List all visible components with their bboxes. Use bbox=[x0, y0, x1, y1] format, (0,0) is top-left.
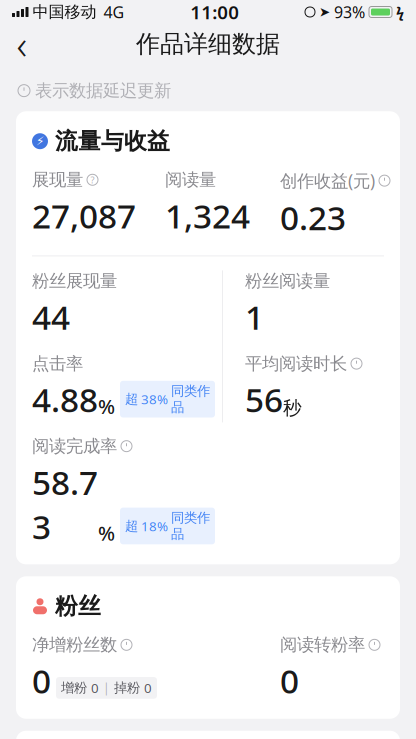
staticText: 展现量 bbox=[32, 169, 83, 190]
staticText: % bbox=[98, 393, 115, 420]
staticText: 93% bbox=[334, 1, 365, 23]
staticText: 净增粉丝数 bbox=[32, 634, 117, 655]
staticText: 18% bbox=[141, 517, 168, 535]
staticText: 38% bbox=[141, 390, 168, 408]
staticText: ⚡︎ bbox=[36, 134, 44, 148]
staticText: 1,324 bbox=[165, 193, 250, 238]
staticText: 11:00 bbox=[190, 0, 239, 24]
staticText: 秒 bbox=[283, 397, 302, 419]
staticText: 粉丝 bbox=[55, 592, 101, 620]
staticText: 0 bbox=[91, 679, 99, 697]
staticText: 掉粉 bbox=[114, 680, 140, 696]
staticText: 表示数据延迟更新 bbox=[35, 80, 171, 101]
staticText: 流量与收益 bbox=[55, 127, 170, 155]
staticText: 0 bbox=[144, 679, 152, 697]
staticText: 58.73 bbox=[32, 460, 98, 548]
staticText: 创作收益(元) bbox=[280, 169, 375, 192]
staticText: 4.88 bbox=[32, 377, 98, 422]
staticText: 0.23 bbox=[280, 195, 346, 239]
staticText: 27,087 bbox=[32, 193, 136, 238]
staticText: 阅读量 bbox=[165, 169, 216, 190]
staticText: ϟ bbox=[396, 2, 404, 22]
staticText: | bbox=[103, 680, 110, 696]
staticText: 阅读完成率 bbox=[32, 435, 117, 457]
button[interactable]: Back bbox=[0, 24, 44, 64]
staticText: 中国移动 bbox=[32, 2, 96, 22]
staticText: 0 bbox=[32, 658, 51, 703]
staticText: 56 bbox=[245, 377, 283, 422]
staticText: ➤ bbox=[319, 4, 330, 19]
staticText: ? bbox=[90, 174, 94, 186]
staticText: 4G bbox=[103, 1, 124, 23]
staticText: 同类作品 bbox=[171, 383, 210, 416]
staticText: 超 bbox=[125, 518, 138, 534]
staticText: ‹ bbox=[16, 17, 27, 70]
staticText: 1 bbox=[245, 295, 264, 339]
staticText: 作品详细数据 bbox=[136, 29, 280, 59]
staticText: 超 bbox=[125, 391, 138, 407]
staticText: 阅读转粉率 bbox=[280, 634, 365, 655]
staticText: 点击率 bbox=[32, 353, 83, 374]
staticText: 粉丝展现量 bbox=[32, 270, 117, 292]
staticText: 增粉 bbox=[61, 680, 87, 696]
staticText: 0 bbox=[280, 658, 299, 703]
staticText: 平均阅读时长 bbox=[245, 353, 347, 374]
staticText: 同类作品 bbox=[171, 510, 210, 542]
staticText: 44 bbox=[32, 295, 70, 339]
staticText: % bbox=[98, 520, 115, 546]
staticText: 粉丝阅读量 bbox=[245, 270, 330, 292]
